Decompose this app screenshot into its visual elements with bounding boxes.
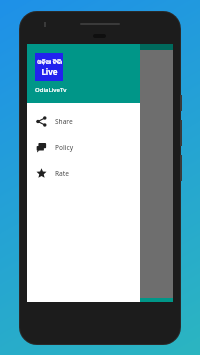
other: Rate	[36, 168, 47, 179]
staticText: Share	[55, 117, 73, 126]
staticText: OdiaLiveTv	[35, 86, 67, 94]
staticText: ଓଡ଼ିଆ ଟିଭି	[37, 58, 62, 65]
staticText: Live	[41, 66, 58, 77]
staticText: Rate	[55, 169, 70, 178]
other: Share	[36, 116, 47, 127]
button[interactable]: Rate	[27, 160, 140, 186]
staticText: Policy	[55, 143, 74, 152]
button[interactable]: Policy	[27, 134, 140, 160]
button[interactable]: Share	[27, 108, 140, 134]
other: Policy	[36, 142, 47, 153]
